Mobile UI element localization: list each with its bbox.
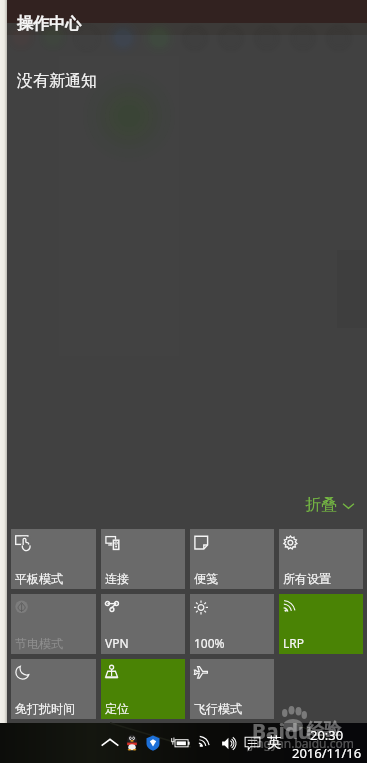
button[interactable]: Security	[140, 723, 166, 763]
button[interactable]: Input method	[239, 723, 265, 763]
button[interactable]: 20:30	[289, 726, 365, 762]
staticText: 便笺	[194, 571, 218, 586]
staticText: 操作中心	[17, 14, 81, 34]
staticText: 20:30	[310, 726, 344, 744]
staticText: 100%	[194, 635, 225, 651]
staticText: 2016/11/16	[292, 744, 362, 762]
button[interactable]: 100%	[190, 594, 274, 654]
staticText: 经验	[307, 719, 341, 740]
staticText: 节电模式	[15, 636, 63, 651]
staticText: Baidu	[252, 717, 312, 746]
button[interactable]: 节电模式	[11, 594, 96, 654]
button[interactable]: QQ	[119, 723, 145, 763]
button[interactable]: 便笺	[190, 529, 274, 589]
button[interactable]: 折叠	[297, 491, 363, 519]
button[interactable]: VPN	[101, 594, 185, 654]
staticText: 折叠	[305, 495, 337, 515]
button[interactable]: 连接	[101, 529, 185, 589]
staticText: 飞行模式	[194, 701, 242, 716]
button[interactable]: LRP	[279, 594, 363, 654]
button[interactable]: 免打扰时间	[11, 659, 96, 719]
staticText: LRP	[283, 635, 305, 651]
button[interactable]: Network	[193, 723, 219, 763]
button[interactable]: Volume	[216, 723, 242, 763]
button[interactable]: 所有设置	[279, 529, 363, 589]
staticText: 免打扰时间	[15, 701, 75, 716]
staticText: 连接	[105, 571, 129, 586]
button[interactable]: 定位	[101, 659, 185, 719]
staticText: 没有新通知	[17, 71, 97, 91]
staticText: VPN	[105, 635, 129, 651]
button[interactable]: 平板模式	[11, 529, 96, 589]
staticText: 定位	[105, 701, 129, 716]
button[interactable]: Show hidden icons	[97, 723, 123, 763]
button[interactable]: 英	[267, 734, 281, 752]
staticText: 平板模式	[15, 571, 63, 586]
button[interactable]: Battery	[168, 723, 194, 763]
staticText: jingyan.baidu.com	[250, 735, 354, 751]
staticText: 所有设置	[283, 571, 331, 586]
button[interactable]: 飞行模式	[190, 659, 274, 719]
